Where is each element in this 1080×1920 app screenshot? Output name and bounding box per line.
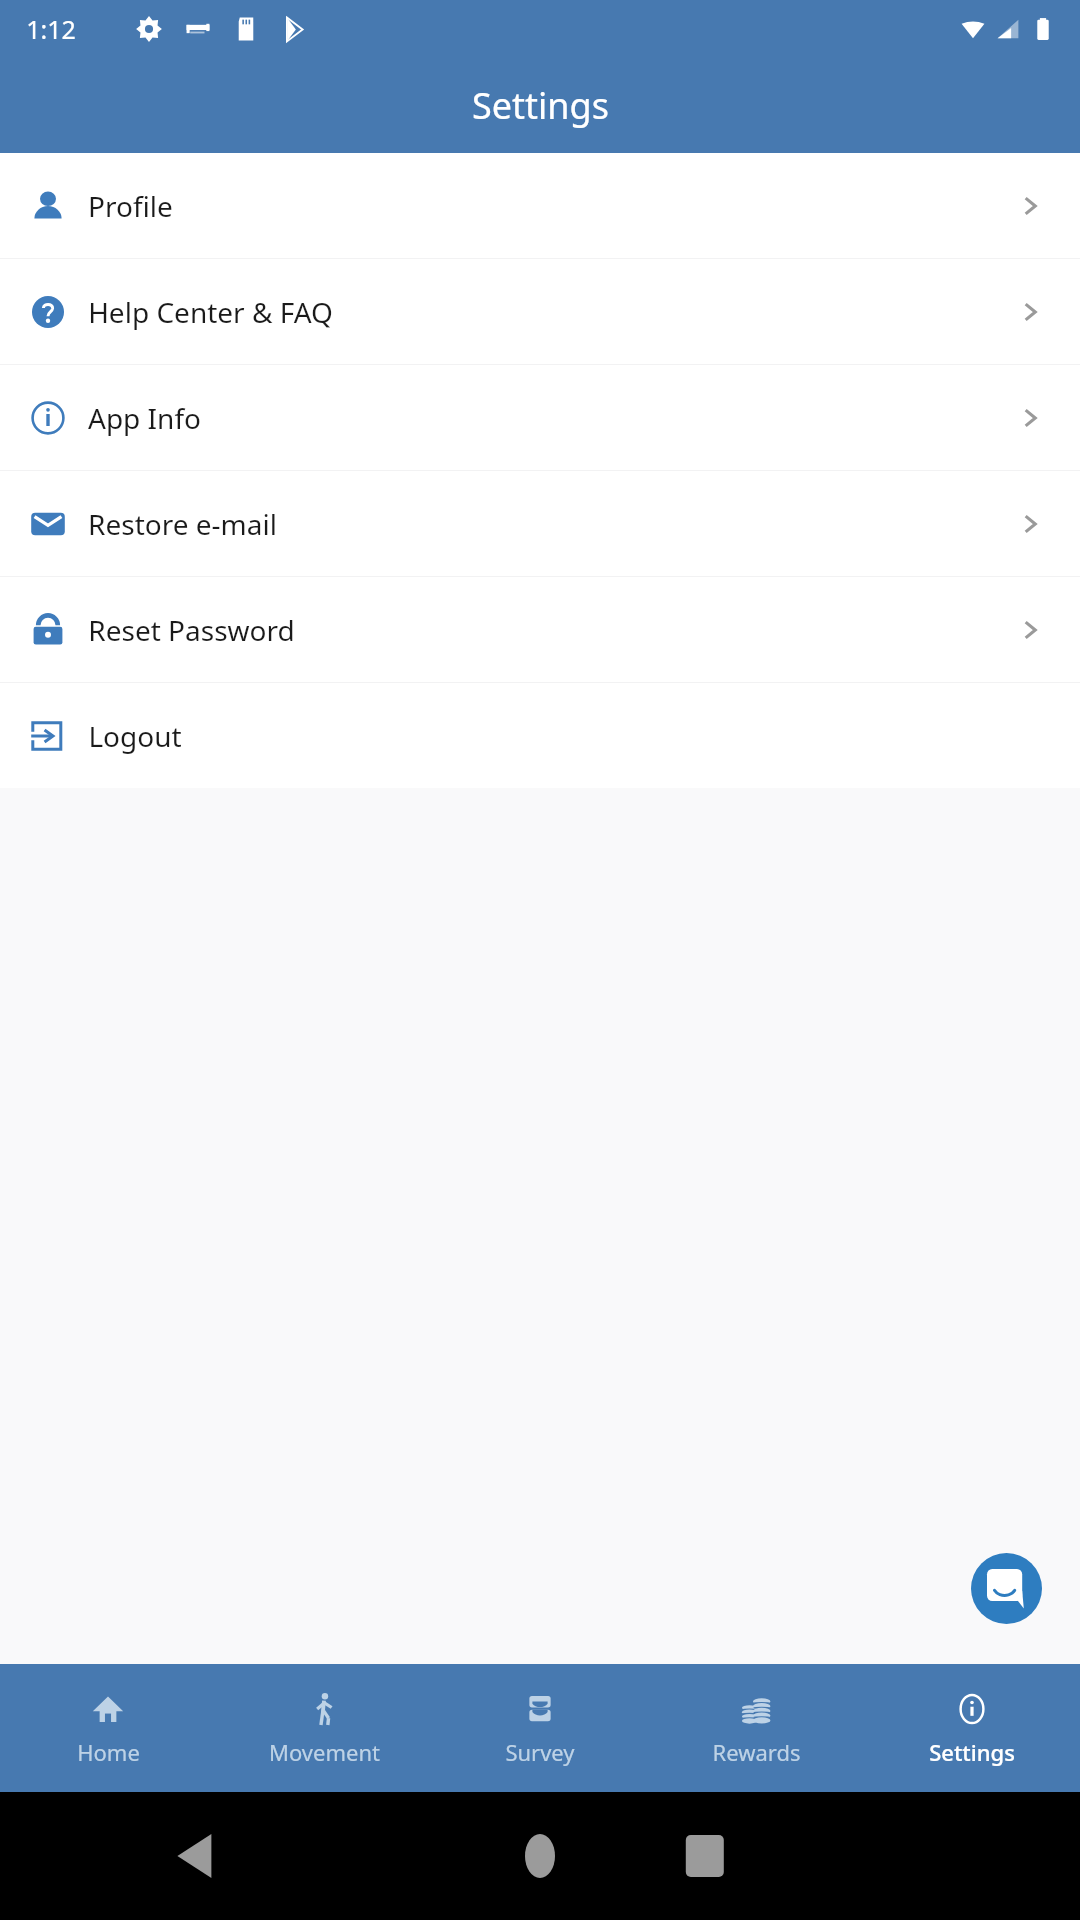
button[interactable]: Help Center & FAQ — [0, 259, 1080, 364]
staticText: Logout — [88, 717, 182, 755]
staticText: Settings — [472, 81, 609, 130]
staticText: Reset Password — [88, 611, 295, 649]
button[interactable]: Logout — [0, 683, 1080, 788]
button[interactable]: Restore e-mail — [0, 471, 1080, 576]
staticText: Home — [77, 1737, 140, 1767]
button[interactable]: Rewards — [648, 1664, 864, 1792]
button[interactable]: Home — [0, 1664, 216, 1792]
staticText: Restore e-mail — [88, 505, 277, 543]
staticText: Settings — [929, 1737, 1015, 1767]
staticText: Profile — [88, 187, 173, 225]
button[interactable]: Movement — [216, 1664, 432, 1792]
staticText: Help Center & FAQ — [88, 293, 333, 331]
staticText: Rewards — [712, 1737, 801, 1767]
button[interactable]: App Info — [0, 365, 1080, 470]
button[interactable]: Settings — [864, 1664, 1080, 1792]
staticText: 1:12 — [26, 12, 76, 46]
button[interactable]: Profile — [0, 153, 1080, 258]
button[interactable]: Open chat support — [971, 1553, 1042, 1624]
staticText: Movement — [269, 1737, 380, 1767]
staticText: Survey — [505, 1737, 575, 1767]
button[interactable]: Reset Password — [0, 577, 1080, 682]
button[interactable]: Survey — [432, 1664, 648, 1792]
staticText: App Info — [88, 399, 201, 437]
